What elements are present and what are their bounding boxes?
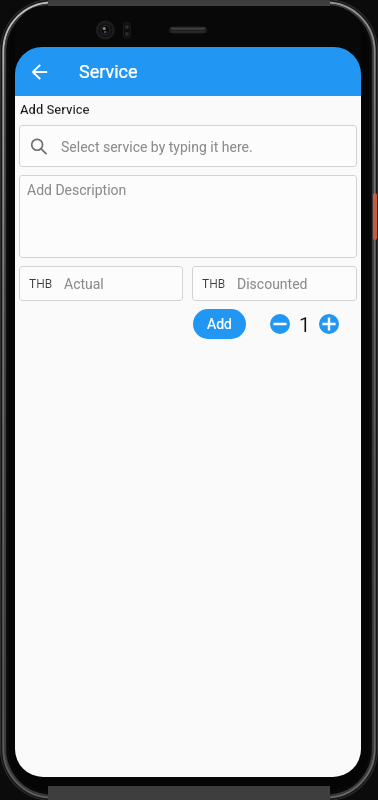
button[interactable]: THB bbox=[192, 266, 357, 301]
staticText: 1 bbox=[299, 313, 311, 336]
staticText: Add bbox=[207, 316, 232, 332]
button[interactable]: Back bbox=[24, 56, 56, 88]
button[interactable]: Add Description bbox=[19, 175, 357, 258]
button[interactable]: Add bbox=[193, 309, 246, 339]
staticText: Select service by typing it here. bbox=[61, 139, 253, 155]
button[interactable]: THB bbox=[19, 266, 183, 301]
staticText: Actual bbox=[64, 276, 104, 292]
staticText: Add Service bbox=[20, 102, 90, 117]
staticText: THB bbox=[29, 277, 53, 291]
button[interactable]: Select service by typing it here. bbox=[19, 125, 357, 167]
button[interactable]: Decrease quantity bbox=[270, 314, 290, 334]
button[interactable]: Increase quantity bbox=[319, 314, 339, 334]
staticText: Add Description bbox=[27, 182, 127, 198]
staticText: Discounted bbox=[237, 276, 308, 292]
staticText: Service bbox=[79, 61, 138, 82]
staticText: THB bbox=[202, 277, 226, 291]
